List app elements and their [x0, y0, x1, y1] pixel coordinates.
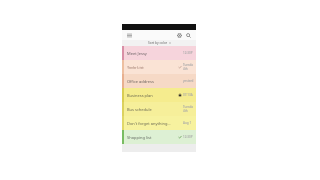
staticText: Shopping list [127, 135, 152, 140]
staticText: Tuesday [183, 105, 194, 109]
staticText: Todo List [127, 65, 144, 70]
button[interactable]: Meet Jessy [122, 46, 196, 60]
staticText: Sort by color [148, 41, 168, 45]
staticText: yesterday [183, 79, 194, 83]
button[interactable]: Bus schedule [122, 102, 196, 116]
staticText: Tuesday [183, 63, 194, 67]
button[interactable]: Don't forget anything... [122, 116, 196, 130]
staticText: Aug 1 [183, 121, 192, 125]
button[interactable]: Search [184, 31, 193, 40]
staticText: Bus schedule [127, 107, 152, 112]
staticText: 12:30PM [183, 51, 194, 55]
button[interactable]: Todo List [122, 60, 196, 74]
button[interactable]: Business plan [122, 88, 196, 102]
staticText: Business plan [127, 93, 153, 98]
staticText: Don't forget anything... [127, 121, 171, 126]
button[interactable]: Settings [175, 31, 184, 40]
button[interactable]: Sort by color [122, 40, 196, 46]
staticText: Meet Jessy [127, 51, 147, 56]
staticText: 4th [183, 67, 188, 71]
button[interactable]: Shopping list [122, 130, 196, 144]
staticText: 07:13AM [183, 93, 194, 97]
staticText: 12:30PM [183, 135, 194, 139]
staticText: Office address [127, 79, 154, 84]
button[interactable]: Open navigation menu [125, 31, 133, 39]
button[interactable]: Office address [122, 74, 196, 88]
staticText: 4th [183, 109, 188, 113]
